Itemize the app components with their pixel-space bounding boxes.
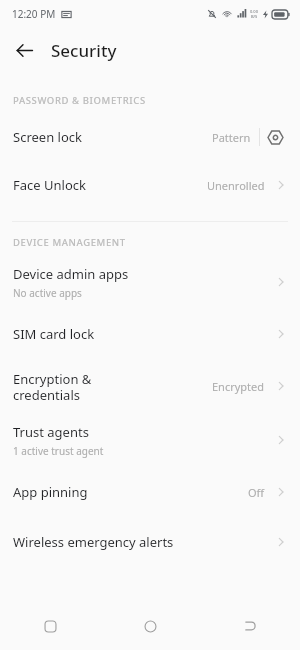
staticText: DEVICE MANAGEMENT <box>13 236 126 249</box>
staticText: Trust agents <box>13 423 89 441</box>
button[interactable]: Wireless emergency alerts <box>0 517 300 567</box>
button[interactable]: Trust agents <box>0 413 300 467</box>
staticText: Off <box>248 485 265 500</box>
staticText: Face Unlock <box>13 176 86 194</box>
staticText: PASSWORD & BIOMETRICS <box>13 94 146 107</box>
button[interactable]: Screen lock settings <box>260 122 290 152</box>
staticText: Unenrolled <box>207 178 265 193</box>
button[interactable]: Face Unlock <box>0 161 300 209</box>
button[interactable]: Screen lock <box>0 113 300 161</box>
staticText: App pinning <box>13 483 88 501</box>
button[interactable]: Device admin apps <box>0 255 300 309</box>
staticText: No active apps <box>13 286 82 300</box>
staticText: Wireless emergency alerts <box>13 533 174 551</box>
button[interactable]: Recents <box>0 602 100 650</box>
staticText: Pattern <box>212 130 251 145</box>
staticText: 0.00 <box>250 9 258 14</box>
button[interactable]: SIM card lock <box>0 309 300 359</box>
staticText: Encrypted <box>212 379 265 394</box>
staticText: 12:20 PM <box>12 7 56 21</box>
staticText: SIM card lock <box>13 325 95 343</box>
staticText: B/S <box>251 14 258 19</box>
button[interactable]: Encryption & credentials <box>0 359 300 413</box>
staticText: 1 active trust agent <box>13 444 104 458</box>
button[interactable]: Back <box>200 602 300 650</box>
staticText: Device admin apps <box>13 265 129 283</box>
staticText: Screen lock <box>13 128 82 146</box>
button[interactable]: Back <box>6 32 42 68</box>
button[interactable]: App pinning <box>0 467 300 517</box>
staticText: Encryption & credentials <box>13 370 92 403</box>
staticText: Security <box>51 39 117 62</box>
button[interactable]: Home <box>100 602 200 650</box>
